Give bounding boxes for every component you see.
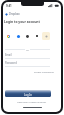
staticText: or: [25, 48, 30, 51]
staticText: New user? Create account: [17, 100, 47, 103]
button[interactable]: Forgot Password?: [34, 70, 54, 73]
button[interactable]: Sign in with X: [33, 32, 41, 40]
staticText: Dropbox: [9, 12, 20, 16]
button[interactable]: Log In: [5, 90, 51, 97]
button[interactable]: Password: [5, 61, 50, 67]
button[interactable]: Sign in with Google: [4, 32, 12, 40]
staticText: 9:41: [6, 4, 12, 8]
staticText: Log In: [24, 93, 32, 97]
button[interactable]: Sign in with Facebook: [14, 32, 22, 40]
staticText: Email: [5, 53, 12, 57]
staticText: Forgot Password?: [34, 70, 54, 73]
staticText: Login to your account: [4, 19, 40, 23]
button[interactable]: Sign in with Apple: [23, 32, 31, 40]
staticText: Password: [5, 61, 17, 65]
button[interactable]: More sign in options: [42, 32, 50, 40]
button[interactable]: Email: [5, 53, 50, 59]
button[interactable]: New user? Create account: [3, 100, 61, 103]
